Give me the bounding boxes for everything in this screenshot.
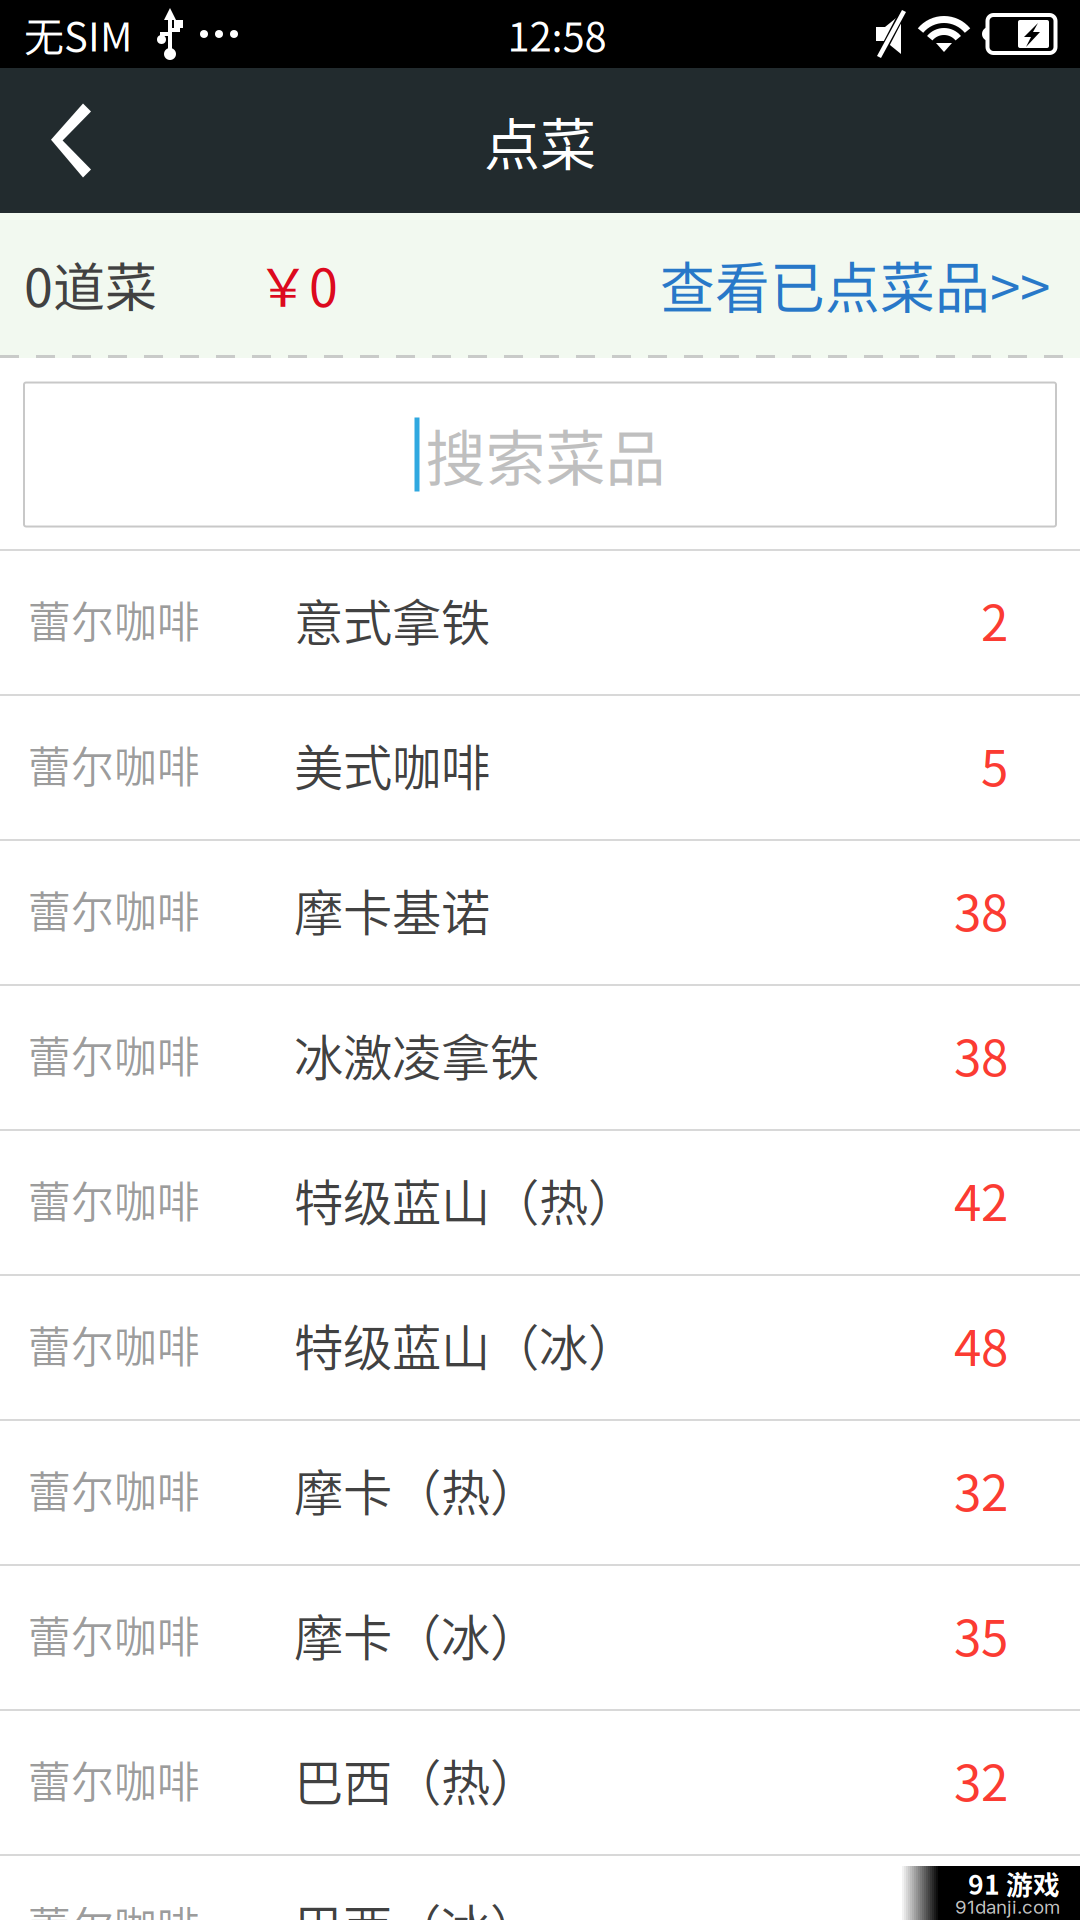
staticText: 蕾尔咖啡 xyxy=(28,1169,200,1230)
button[interactable]: 蕾尔咖啡 xyxy=(0,696,1080,841)
staticText: 特级蓝山（冰） xyxy=(294,1309,637,1380)
staticText: 38 xyxy=(954,874,1008,945)
staticText: 12:58 xyxy=(507,5,606,63)
staticText: 32 xyxy=(954,1744,1008,1815)
staticText: 摩卡基诺 xyxy=(294,874,490,945)
button[interactable]: 蕾尔咖啡 xyxy=(0,841,1080,986)
staticText: 蕾尔咖啡 xyxy=(28,1024,200,1085)
button[interactable]: 蕾尔咖啡 xyxy=(0,551,1080,696)
staticText: 48 xyxy=(954,1309,1008,1380)
staticText: 摩卡（冰） xyxy=(294,1599,539,1670)
button[interactable]: 蕾尔咖啡 xyxy=(0,1566,1080,1711)
staticText: 点菜 xyxy=(484,100,596,181)
staticText: 42 xyxy=(954,1164,1008,1235)
button[interactable]: 返回 xyxy=(0,68,140,213)
staticText: 91danji.com xyxy=(955,1896,1060,1918)
staticText: 5 xyxy=(981,729,1008,800)
staticText: 蕾尔咖啡 xyxy=(28,1604,200,1665)
staticText: ￥0 xyxy=(257,246,338,322)
staticText: 35 xyxy=(954,1889,1008,1920)
staticText: 搜索菜品 xyxy=(425,411,665,498)
staticText: 摩卡（热） xyxy=(294,1454,539,1525)
staticText: 美式咖啡 xyxy=(294,729,490,800)
staticText: 特级蓝山（热） xyxy=(294,1164,637,1235)
button[interactable]: 查看已点菜品>> xyxy=(660,244,1050,324)
staticText: 32 xyxy=(954,1454,1008,1525)
staticText: 91 游戏 xyxy=(968,1864,1060,1902)
button[interactable]: 蕾尔咖啡 xyxy=(0,986,1080,1131)
staticText: 蕾尔咖啡 xyxy=(28,1894,200,1920)
staticText: 蕾尔咖啡 xyxy=(28,1749,200,1810)
button[interactable]: 搜索菜品 xyxy=(0,370,1080,539)
staticText: 蕾尔咖啡 xyxy=(28,734,200,795)
staticText: 无SIM xyxy=(24,5,132,63)
staticText: 冰激凌拿铁 xyxy=(294,1019,539,1090)
button[interactable]: 蕾尔咖啡 xyxy=(0,1276,1080,1421)
staticText: 蕾尔咖啡 xyxy=(28,589,200,650)
staticText: 蕾尔咖啡 xyxy=(28,879,200,940)
button[interactable]: 蕾尔咖啡 xyxy=(0,1856,1080,1920)
staticText: 2 xyxy=(981,584,1008,655)
button[interactable]: 蕾尔咖啡 xyxy=(0,1421,1080,1566)
staticText: 35 xyxy=(954,1599,1008,1670)
staticText: 意式拿铁 xyxy=(294,584,490,655)
button[interactable]: 蕾尔咖啡 xyxy=(0,1131,1080,1276)
staticText: 巴西（热） xyxy=(294,1744,539,1815)
staticText: 蕾尔咖啡 xyxy=(28,1314,200,1375)
button[interactable]: 蕾尔咖啡 xyxy=(0,1711,1080,1856)
staticText: 蕾尔咖啡 xyxy=(28,1459,200,1520)
staticText: 查看已点菜品>> xyxy=(660,244,1050,324)
staticText: 巴西（冰） xyxy=(294,1889,539,1920)
staticText: 0道菜 xyxy=(24,246,157,322)
staticText: 38 xyxy=(954,1019,1008,1090)
